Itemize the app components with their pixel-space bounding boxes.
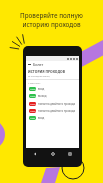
staticText: вход [38, 116, 45, 120]
other: Recents [68, 152, 72, 156]
staticText: 10:51 [30, 117, 36, 120]
staticText: историю проходов [22, 20, 81, 29]
staticText: 10:47 [30, 110, 36, 113]
button[interactable]: 10:47 [26, 100, 79, 107]
staticText: 10:47 [30, 103, 36, 106]
staticText: вход [38, 87, 45, 91]
staticText: попытка двойного прохода [38, 109, 76, 113]
staticText: 7 мая 2021 [28, 81, 41, 84]
other: Home [51, 152, 55, 156]
button[interactable]: 10:42 [26, 92, 79, 99]
staticText: Билет [33, 62, 44, 67]
button[interactable]: 10:40 [26, 85, 79, 92]
staticText: за последний месяц [28, 75, 50, 78]
staticText: 10:42 [30, 95, 36, 98]
staticText: Проверяйте полную [20, 11, 83, 20]
button[interactable]: 10:47 [26, 107, 79, 114]
staticText: попытка двойного прохода [38, 102, 76, 106]
staticText: ИСТОРИЯ ПРОХОДОВ [28, 69, 65, 74]
button[interactable]: Back [26, 61, 79, 68]
staticText: выход [38, 94, 47, 98]
other: Back [33, 152, 37, 156]
staticText: 10:40 [30, 88, 36, 91]
button[interactable]: 10:51 [26, 114, 79, 121]
other: Back [28, 63, 31, 66]
